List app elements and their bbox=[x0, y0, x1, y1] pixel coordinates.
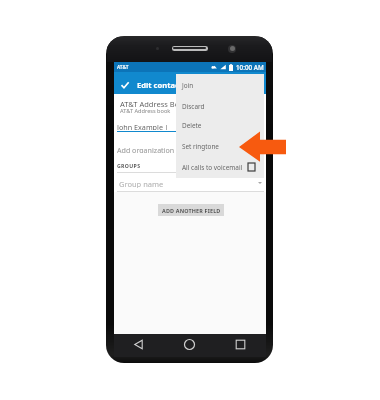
button[interactable]: Join bbox=[176, 75, 264, 95]
staticText: AT&T bbox=[117, 64, 129, 71]
staticText: AT&T Address Book bbox=[120, 99, 188, 108]
staticText: 10:00 AM bbox=[236, 63, 264, 72]
button[interactable]: All calls to voicemail bbox=[176, 156, 264, 178]
other: Save contact bbox=[121, 81, 129, 89]
staticText: Join bbox=[182, 81, 194, 90]
staticText: John Example | bbox=[117, 122, 169, 130]
button[interactable]: Back bbox=[132, 338, 145, 351]
staticText: All calls to voicemail bbox=[182, 163, 243, 172]
staticText: ADD ANOTHER FIELD bbox=[162, 207, 221, 214]
button[interactable]: Save contact bbox=[114, 72, 266, 94]
button[interactable]: Home bbox=[183, 338, 196, 351]
button[interactable]: Recent apps bbox=[234, 338, 247, 351]
staticText: Add organization bbox=[117, 145, 175, 153]
staticText: GROUPS bbox=[117, 162, 141, 168]
staticText: Discard bbox=[182, 102, 205, 111]
staticText: AT&T Address book bbox=[120, 107, 171, 114]
button[interactable]: Discard bbox=[176, 96, 264, 116]
button[interactable]: Delete bbox=[176, 115, 264, 135]
button[interactable]: ADD ANOTHER FIELD bbox=[158, 204, 224, 216]
button[interactable]: Set ringtone bbox=[176, 136, 264, 156]
staticText: Group name bbox=[119, 179, 164, 188]
staticText: Set ringtone bbox=[182, 142, 219, 151]
staticText: Edit contact bbox=[137, 80, 183, 90]
staticText: Delete bbox=[182, 121, 202, 130]
